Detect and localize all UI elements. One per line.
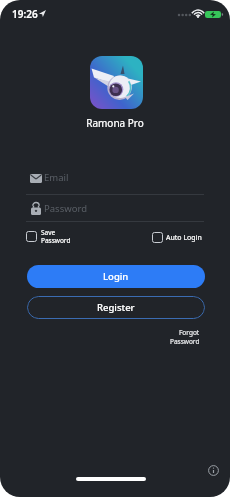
button[interactable] xyxy=(208,465,219,476)
staticText: Auto Login xyxy=(166,233,202,243)
button[interactable] xyxy=(26,231,37,242)
staticText: Login xyxy=(103,270,129,283)
staticText: Forgot xyxy=(179,328,200,337)
button[interactable]: Login xyxy=(27,265,205,288)
staticText: Password xyxy=(44,202,87,215)
staticText: Ramona Pro xyxy=(0,116,230,130)
button[interactable]: Register xyxy=(27,296,205,319)
button[interactable]: Forgot xyxy=(130,328,200,346)
button[interactable] xyxy=(152,232,163,243)
staticText: 19:26 xyxy=(12,7,38,21)
staticText: Password xyxy=(170,337,200,346)
staticText: Register xyxy=(97,301,135,314)
staticText: Save Password xyxy=(41,228,71,245)
staticText: Email xyxy=(44,171,69,184)
button[interactable] xyxy=(26,168,204,195)
button[interactable] xyxy=(26,199,204,222)
button[interactable] xyxy=(90,56,143,109)
